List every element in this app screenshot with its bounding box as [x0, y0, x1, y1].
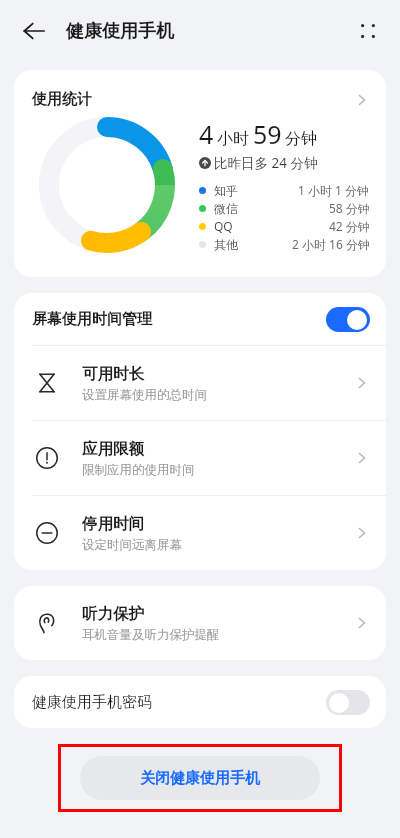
staticText: 设置屏幕使用的总时间	[82, 387, 207, 403]
staticText: 可用时长	[82, 364, 144, 384]
staticText: 应用限额	[82, 439, 144, 459]
button[interactable]: Toggle on	[326, 307, 370, 332]
button[interactable]: 健康使用手机密码	[14, 676, 386, 728]
staticText: 4	[199, 117, 214, 151]
staticText: 屏幕使用时间管理	[32, 310, 152, 329]
button[interactable]: 使用统计	[14, 70, 386, 113]
staticText: 设定时间远离屏幕	[82, 537, 182, 553]
staticText: 59	[253, 117, 282, 151]
button[interactable]: 听力保护	[14, 586, 386, 660]
button[interactable]: 停用时间	[14, 496, 386, 570]
staticText: 停用时间	[82, 514, 144, 534]
staticText: 使用统计	[32, 90, 92, 109]
button[interactable]: Back	[14, 11, 54, 51]
staticText: 其他	[214, 237, 238, 252]
staticText: 微信	[214, 201, 238, 216]
staticText: 58 分钟	[329, 200, 370, 216]
staticText: 耳机音量及听力保护提醒	[82, 627, 220, 643]
button[interactable]: 应用限额	[14, 421, 386, 495]
button[interactable]: 屏幕使用时间管理	[14, 293, 386, 345]
staticText: 健康使用手机	[66, 20, 174, 43]
staticText: 知乎	[214, 183, 238, 198]
staticText: 比昨日多 24 分钟	[214, 154, 318, 172]
staticText: 关闭健康使用手机	[140, 769, 260, 788]
staticText: QQ	[214, 218, 233, 234]
staticText: 小时	[217, 129, 249, 149]
staticText: 听力保护	[82, 604, 144, 624]
staticText: 42 分钟	[329, 218, 370, 234]
staticText: 2 小时 16 分钟	[292, 236, 370, 252]
button[interactable]: More options	[348, 11, 388, 51]
staticText: 1 小时 1 分钟	[298, 182, 370, 198]
staticText: 限制应用的使用时间	[82, 462, 195, 478]
staticText: 健康使用手机密码	[32, 693, 152, 712]
button[interactable]: 可用时长	[14, 346, 386, 420]
button[interactable]: 关闭健康使用手机	[80, 756, 320, 800]
staticText: 分钟	[285, 129, 317, 149]
button[interactable]: Toggle off	[326, 690, 370, 715]
